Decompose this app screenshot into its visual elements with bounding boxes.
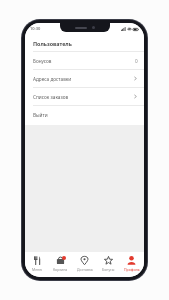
- staticText: 10:30: [30, 26, 41, 31]
- button[interactable]: Бонусы: [97, 256, 120, 272]
- staticText: Профиль: [124, 267, 140, 272]
- staticText: Пользователь: [33, 40, 72, 47]
- button[interactable]: Список заказов: [25, 88, 144, 105]
- staticText: Бонусы: [102, 267, 115, 272]
- staticText: 0: [135, 58, 138, 64]
- button[interactable]: Выйти: [25, 106, 144, 123]
- staticText: Бонусов: [33, 58, 52, 64]
- staticText: Адреса доставки: [33, 76, 72, 82]
- staticText: Доставка: [77, 267, 93, 272]
- staticText: Выйти: [33, 112, 48, 118]
- button[interactable]: Доставка: [73, 256, 96, 272]
- button[interactable]: Адреса доставки: [25, 70, 144, 87]
- button[interactable]: Профиль: [120, 256, 143, 272]
- button[interactable]: Бонусов: [25, 52, 144, 69]
- staticText: Меню: [32, 267, 43, 272]
- button[interactable]: Корзина: [49, 256, 72, 272]
- button[interactable]: Меню: [26, 256, 49, 272]
- staticText: Список заказов: [33, 94, 69, 100]
- staticText: Корзина: [53, 267, 68, 272]
